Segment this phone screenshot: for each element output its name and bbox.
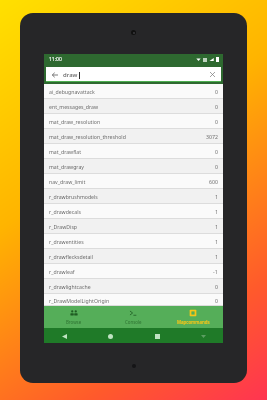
staticText: 0: [215, 297, 218, 304]
button[interactable]: Hide keyboard: [197, 330, 209, 342]
staticText: 0: [215, 148, 218, 155]
button[interactable]: mat_drawgray: [44, 159, 223, 174]
staticText: Console: [125, 319, 142, 325]
staticText: r_drawleaf: [49, 268, 213, 275]
staticText: 600: [209, 178, 218, 185]
staticText: 1: [215, 193, 218, 200]
button[interactable]: r_DrawModelLightOrigin: [44, 294, 223, 306]
button[interactable]: ai_debugnavattack: [44, 84, 223, 99]
staticText: 11:00: [49, 56, 62, 63]
button[interactable]: r_drawdecals: [44, 204, 223, 219]
staticText: 0: [215, 118, 218, 125]
staticText: 1: [215, 223, 218, 230]
button[interactable]: ent_messages_draw: [44, 99, 223, 114]
button[interactable]: Home: [104, 330, 116, 342]
staticText: mat_draw_resolution: [49, 118, 215, 125]
staticText: ent_messages_draw: [49, 103, 215, 110]
button[interactable]: Back: [58, 330, 70, 342]
staticText: 0: [215, 88, 218, 95]
button[interactable]: mat_draw_resolution: [44, 114, 223, 129]
staticText: nav_draw_limit: [49, 178, 209, 185]
button[interactable]: Back: [50, 70, 59, 79]
button[interactable]: Recent apps: [151, 330, 163, 342]
staticText: ai_debugnavattack: [49, 88, 215, 95]
staticText: r_drawentities: [49, 238, 215, 245]
staticText: r_drawbrushmodels: [49, 193, 215, 200]
button[interactable]: r_drawflecksdetail: [44, 249, 223, 264]
button[interactable]: r_drawlightcache: [44, 279, 223, 294]
button[interactable]: Browse: [44, 306, 103, 328]
staticText: r_drawflecksdetail: [49, 253, 215, 260]
staticText: 3072: [206, 133, 218, 140]
button[interactable]: r_drawentities: [44, 234, 223, 249]
button[interactable]: mat_drawflat: [44, 144, 223, 159]
button[interactable]: Mapcommands: [163, 306, 223, 328]
staticText: Browse: [66, 319, 82, 325]
button[interactable]: nav_draw_limit: [44, 174, 223, 189]
staticText: mat_drawgray: [49, 163, 215, 170]
staticText: 0: [215, 103, 218, 110]
button[interactable]: mat_draw_resolution_threshold: [44, 129, 223, 144]
staticText: 1: [215, 238, 218, 245]
staticText: Mapcommands: [177, 319, 210, 325]
staticText: -1: [213, 268, 218, 275]
button[interactable]: Console: [103, 306, 163, 328]
staticText: 0: [215, 283, 218, 290]
staticText: r_drawlightcache: [49, 283, 215, 290]
staticText: r_DrawModelLightOrigin: [49, 297, 215, 304]
button[interactable]: r_DrawDisp: [44, 219, 223, 234]
staticText: 1: [215, 208, 218, 215]
staticText: 1: [215, 253, 218, 260]
staticText: draw: [63, 71, 78, 79]
button[interactable]: r_drawbrushmodels: [44, 189, 223, 204]
staticText: r_DrawDisp: [49, 223, 215, 230]
staticText: r_drawdecals: [49, 208, 215, 215]
button[interactable]: r_drawleaf: [44, 264, 223, 279]
staticText: mat_drawflat: [49, 148, 215, 155]
staticText: mat_draw_resolution_threshold: [49, 133, 206, 140]
staticText: 0: [215, 163, 218, 170]
button[interactable]: Clear search: [208, 70, 217, 79]
